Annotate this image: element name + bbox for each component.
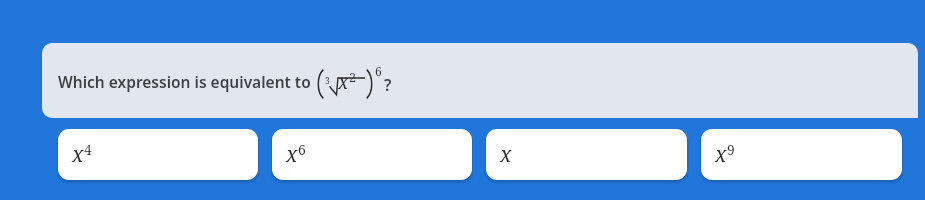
staticText: x [715, 140, 727, 169]
staticText: 9 [727, 140, 735, 159]
button[interactable]: x [486, 129, 687, 180]
button[interactable]: x [701, 129, 902, 180]
staticText: 4 [84, 140, 92, 159]
staticText: ? [384, 74, 392, 96]
staticText: 6 [375, 63, 382, 79]
staticText: x [286, 140, 298, 169]
staticText: x [500, 140, 512, 169]
button[interactable]: x [58, 129, 258, 180]
staticText: 3 [325, 75, 330, 87]
staticText: 6 [298, 140, 306, 159]
staticText: 2 [349, 69, 357, 86]
button[interactable]: x [272, 129, 472, 180]
staticText: x [72, 140, 84, 169]
staticText: Which expression is equivalent to [58, 71, 315, 92]
staticText: x [338, 69, 349, 95]
